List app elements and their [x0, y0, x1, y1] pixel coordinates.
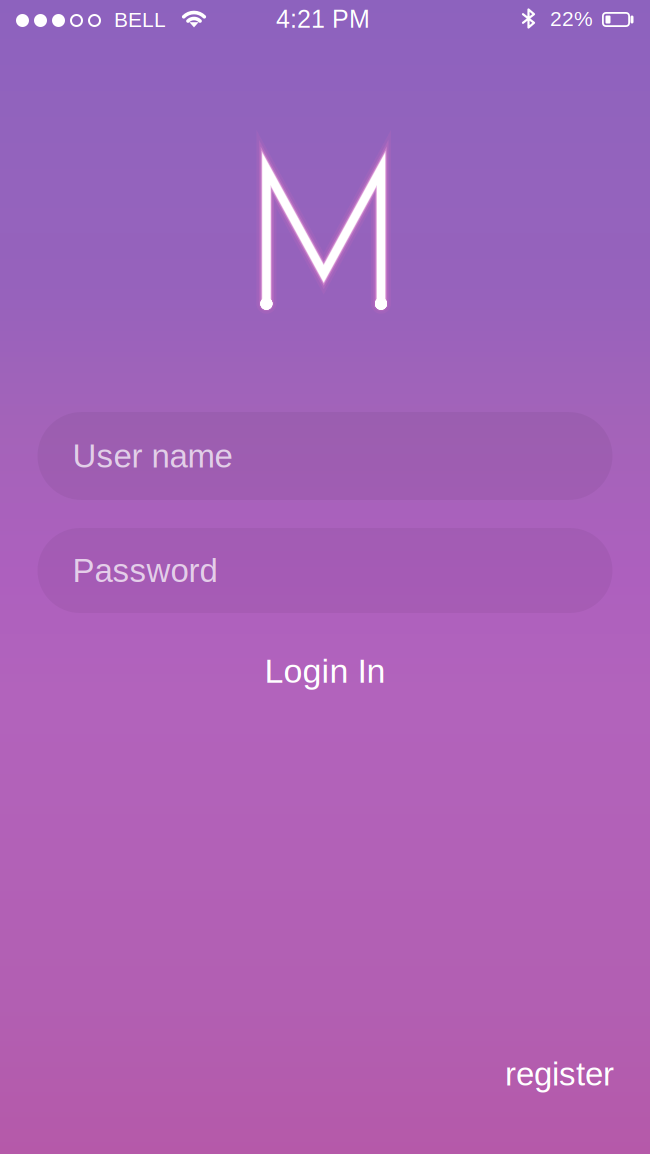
button[interactable]: register	[505, 1048, 650, 1100]
staticText: register	[505, 1056, 614, 1092]
button[interactable]: Password	[37, 528, 612, 613]
staticText: Login In	[264, 652, 385, 690]
staticText: BELL	[114, 8, 166, 31]
staticText: User name	[72, 438, 232, 474]
staticText: 4:21 PM	[276, 5, 370, 33]
staticText: 22%	[550, 7, 593, 30]
staticText: Password	[72, 552, 217, 589]
button[interactable]: Login In	[175, 640, 475, 702]
button[interactable]: User name	[37, 412, 612, 500]
